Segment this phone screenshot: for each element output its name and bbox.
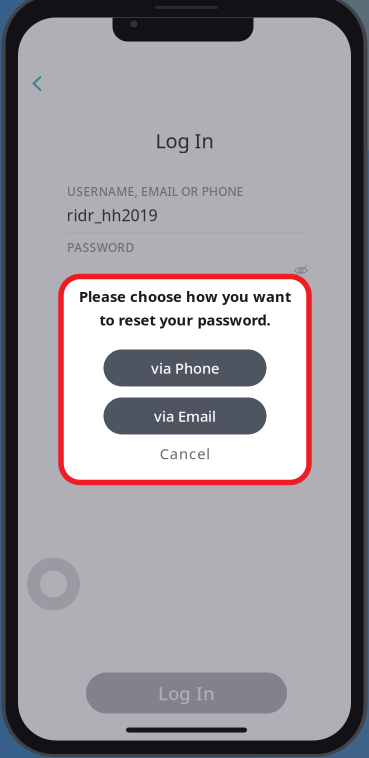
- button[interactable]: Cancel: [135, 440, 235, 466]
- button[interactable]: via Email: [103, 397, 266, 434]
- staticText: ridr_hh2019: [66, 204, 157, 226]
- staticText: Please choose how you want: [79, 286, 291, 306]
- staticText: PASSWORD: [67, 239, 134, 255]
- staticText: to reset your password.: [99, 310, 270, 329]
- staticText: Cancel: [160, 444, 210, 463]
- staticText: Log In: [158, 681, 215, 705]
- button[interactable]: Back: [19, 65, 55, 101]
- button[interactable]: Log In: [86, 672, 287, 713]
- staticText: via Phone: [151, 358, 219, 378]
- button[interactable]: Show password: [287, 257, 315, 283]
- staticText: USERNAME, EMAIL OR PHONE: [67, 183, 244, 199]
- button[interactable]: via Phone: [103, 349, 266, 386]
- staticText: via Email: [154, 406, 216, 426]
- staticText: Log In: [155, 127, 213, 154]
